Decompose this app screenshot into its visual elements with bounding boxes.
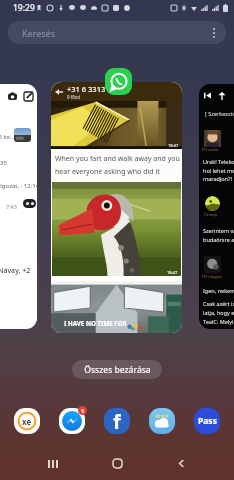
staticText: xe: [22, 416, 32, 427]
staticText: Igen, nekem, d: [203, 287, 234, 294]
staticText: Návay, +2: [0, 266, 31, 276]
staticText: Urak! Telekomo hol lehet megc maradjon?!: [203, 158, 234, 182]
staticText: Keresés: [22, 27, 55, 39]
staticText: 1: [81, 407, 85, 414]
button[interactable]: XE Currency: [14, 408, 40, 434]
staticText: TealC: Melyik te: [203, 318, 234, 325]
button[interactable]: Weather: [149, 408, 175, 434]
staticText: [ Szerkesztve ]: [205, 110, 234, 117]
staticText: Pass: [198, 415, 217, 427]
button[interactable]: Back: [149, 447, 213, 480]
staticText: 5 be…: [0, 133, 15, 140]
button[interactable]: Recents: [21, 447, 85, 480]
staticText: When you fart and walk away and you hear…: [55, 154, 181, 176]
button[interactable]: Pass: [194, 408, 220, 434]
button[interactable]: Home: [85, 447, 149, 480]
button[interactable]: Összes bezárása: [72, 360, 162, 379]
button[interactable]: WhatsApp: [105, 68, 132, 95]
staticText: Összes bezárása: [84, 364, 151, 376]
button[interactable]: [ Szerkesztve ]: [199, 84, 234, 329]
button[interactable]: Facebook: [104, 408, 130, 434]
staticText: Ünnep: [204, 212, 218, 218]
button[interactable]: +31 6 3313: [51, 82, 182, 333]
staticText: f: [113, 408, 121, 434]
staticText: Szerintem vala budaörsre a TH: [203, 227, 234, 243]
staticText: FH szóló: [202, 147, 219, 153]
staticText: +31 6 3313: [67, 84, 106, 94]
staticText: 18:47: [168, 143, 179, 148]
button[interactable]: Keresés: [8, 21, 226, 44]
staticText: dolgozat, · 12:14: [0, 182, 37, 190]
staticText: I HAVE NO TIME FOR: [64, 319, 127, 327]
staticText: 7:43: [6, 203, 17, 210]
staticText: Csak azért irtan latja, hogy ebbo: [203, 300, 234, 316]
staticText: FH nagyúr: [202, 274, 223, 280]
staticText: 35: [0, 159, 7, 167]
button[interactable]: 5 be…: [0, 84, 37, 329]
button[interactable]: Messenger: [59, 408, 85, 434]
staticText: 9 fősd: [67, 94, 80, 100]
staticText: 19:29: [13, 2, 35, 14]
staticText: 18:47: [167, 270, 178, 275]
